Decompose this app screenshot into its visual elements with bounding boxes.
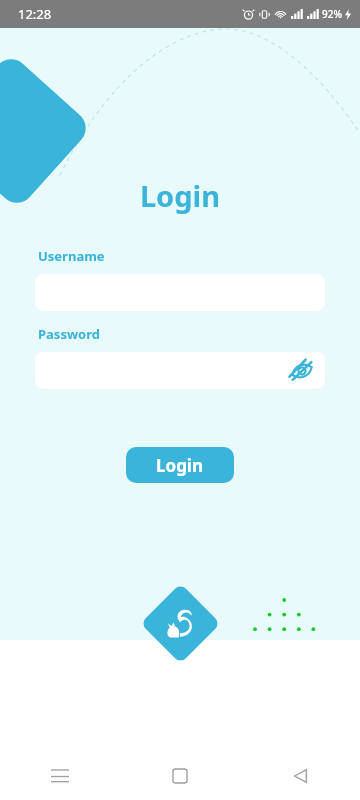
staticText: Username xyxy=(38,247,105,265)
button[interactable]: Login xyxy=(126,447,234,483)
button[interactable]: Recent apps xyxy=(0,752,120,800)
button[interactable]: Show password xyxy=(35,352,325,389)
staticText: Password xyxy=(38,325,100,343)
staticText: Login xyxy=(0,176,360,215)
staticText: 12:28 xyxy=(18,5,52,23)
button[interactable]: Back xyxy=(240,752,360,800)
button[interactable]: Home xyxy=(120,752,240,800)
staticText: Login xyxy=(156,454,204,477)
staticText: 92% xyxy=(322,7,342,21)
button[interactable]: Show password xyxy=(285,354,319,388)
